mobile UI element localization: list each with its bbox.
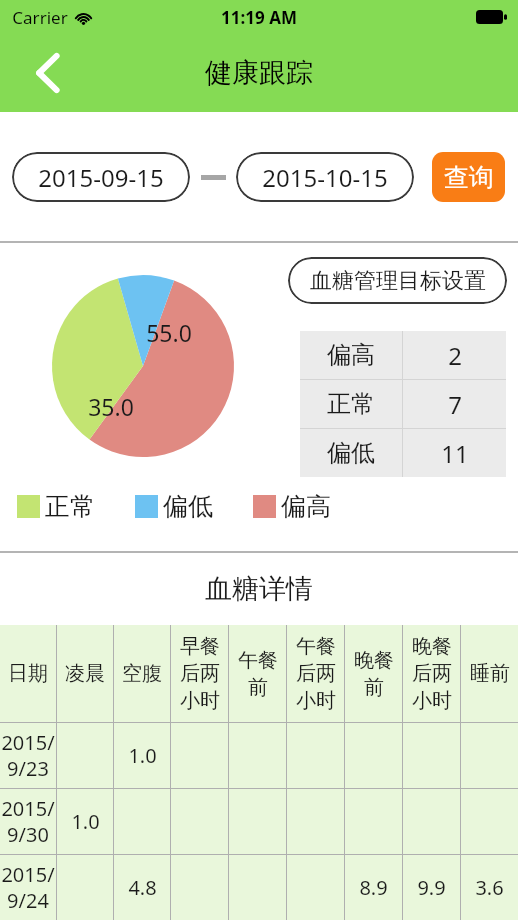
staticText: 晚餐 后两 小时 [412, 634, 452, 713]
staticText: 35.0 [88, 391, 134, 422]
staticText: 偏低 [163, 491, 213, 522]
button[interactable]: 血糖管理目标设置 [288, 257, 507, 304]
staticText: 早餐 后两 小时 [180, 634, 220, 713]
staticText: 正常 [327, 389, 375, 419]
button[interactable]: 查询 [432, 152, 505, 202]
staticText: 2015/ 9/23 [1, 729, 55, 782]
staticText: 日期 [8, 661, 48, 686]
staticText: 1.0 [128, 742, 157, 769]
staticText: 偏高 [327, 340, 375, 370]
button[interactable]: 2015/ 9/30 [0, 789, 56, 854]
staticText: 2015-10-15 [262, 161, 388, 194]
staticText: 午餐 前 [238, 648, 278, 700]
staticText: 晚餐 前 [354, 648, 394, 700]
staticText: 9.9 [417, 874, 446, 901]
staticText: Carrier [12, 6, 68, 29]
staticText: 11 [441, 437, 469, 470]
staticText: 正常 [45, 491, 95, 522]
button[interactable]: 1.0 [57, 789, 113, 854]
staticText: 偏高 [281, 491, 331, 522]
staticText: 11:19 AM [221, 6, 297, 29]
button[interactable]: 2015-10-15 [236, 152, 414, 202]
staticText: 睡前 [470, 661, 510, 686]
button[interactable]: 2015/ 9/23 [0, 723, 56, 788]
staticText: 3.6 [475, 874, 504, 901]
staticText: 偏低 [327, 438, 375, 468]
staticText: 55.0 [146, 317, 192, 348]
staticText: 血糖详情 [205, 572, 313, 606]
staticText: 空腹 [122, 661, 162, 686]
button[interactable]: 4.8 [114, 855, 170, 920]
staticText: 查询 [444, 162, 494, 193]
button[interactable]: 1.0 [114, 723, 170, 788]
staticText: 1.0 [71, 808, 100, 835]
staticText: 2 [448, 339, 462, 372]
button[interactable]: 3.6 [461, 855, 518, 920]
staticText: 2015-09-15 [38, 161, 164, 194]
staticText: 8.9 [359, 874, 388, 901]
staticText: 凌晨 [65, 661, 105, 686]
staticText: 4.8 [128, 874, 157, 901]
staticText: 7 [448, 388, 462, 421]
button[interactable]: 8.9 [345, 855, 402, 920]
button[interactable]: 2015-09-15 [12, 152, 190, 202]
staticText: 2015/ 9/30 [1, 795, 55, 848]
staticText: 健康跟踪 [205, 56, 313, 90]
staticText: 午餐 后两 小时 [296, 634, 336, 713]
button[interactable]: 9.9 [403, 855, 460, 920]
staticText: 2015/ 9/24 [1, 861, 55, 914]
button[interactable]: 2015/ 9/24 [0, 855, 56, 920]
button[interactable]: Back [20, 45, 76, 101]
staticText: 血糖管理目标设置 [310, 267, 486, 295]
